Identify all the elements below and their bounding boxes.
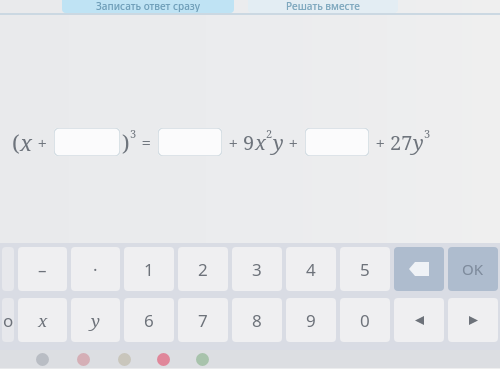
button[interactable]: App xyxy=(118,353,131,366)
button[interactable]: Answer field xyxy=(54,128,120,156)
staticText: = xyxy=(137,131,156,154)
button[interactable]: Решать вместе xyxy=(248,0,398,13)
button[interactable]: Move left xyxy=(394,298,444,342)
staticText: ( xyxy=(12,127,20,157)
staticText: 4 xyxy=(306,258,316,281)
button[interactable]: 9 xyxy=(286,298,336,342)
staticText: 0 xyxy=(360,309,370,332)
staticText: 7 xyxy=(198,309,208,332)
staticText: 27 xyxy=(390,129,413,156)
button[interactable]: App xyxy=(196,353,209,366)
button[interactable]: – xyxy=(18,247,67,291)
staticText: y xyxy=(91,309,100,332)
button[interactable]: 1 xyxy=(124,247,174,291)
button[interactable]: 2 xyxy=(178,247,228,291)
staticText: 1 xyxy=(144,258,154,281)
button[interactable]: Записать ответ сразу xyxy=(62,0,234,13)
staticText: Записать ответ сразу xyxy=(96,0,200,12)
button[interactable]: o xyxy=(2,298,14,342)
staticText: 3 xyxy=(252,258,262,281)
staticText: 3 xyxy=(424,126,431,141)
staticText: 6 xyxy=(144,309,154,332)
staticText: Решать вместе xyxy=(286,0,360,12)
button[interactable]: Backspace xyxy=(394,247,444,291)
staticText: y xyxy=(273,129,284,156)
staticText: · xyxy=(93,258,98,281)
button[interactable]: 7 xyxy=(178,298,228,342)
button[interactable]: · xyxy=(71,247,120,291)
button[interactable]: App xyxy=(36,353,49,366)
staticText: 9 xyxy=(306,309,316,332)
staticText: + xyxy=(371,131,390,154)
staticText: + xyxy=(284,131,303,154)
button[interactable]: App xyxy=(157,353,170,366)
button[interactable]: 8 xyxy=(232,298,282,342)
button[interactable]: 4 xyxy=(286,247,336,291)
staticText: ) xyxy=(122,127,130,157)
staticText: y xyxy=(413,129,424,156)
staticText: – xyxy=(38,258,47,281)
button[interactable]: Answer field xyxy=(305,128,369,156)
button[interactable]: x xyxy=(18,298,67,342)
button[interactable]: OK xyxy=(448,247,498,291)
button[interactable]: App xyxy=(77,353,90,366)
button[interactable]: 0 xyxy=(340,298,390,342)
staticText: 9 xyxy=(243,129,255,156)
staticText: + xyxy=(224,131,243,154)
staticText: 3 xyxy=(130,126,137,141)
button[interactable]: 6 xyxy=(124,298,174,342)
button[interactable]: Answer field xyxy=(158,128,222,156)
button[interactable]: y xyxy=(71,298,120,342)
button[interactable]: 3 xyxy=(232,247,282,291)
staticText: x xyxy=(38,309,48,332)
staticText: + xyxy=(33,131,52,154)
staticText: 5 xyxy=(360,258,370,281)
staticText: OK xyxy=(462,259,484,279)
staticText: o xyxy=(3,309,14,332)
staticText: x xyxy=(255,129,266,156)
staticText: 2 xyxy=(198,258,208,281)
button[interactable]: Move right xyxy=(448,298,498,342)
staticText: 8 xyxy=(252,309,262,332)
staticText: x xyxy=(20,127,33,157)
button[interactable]: 5 xyxy=(340,247,390,291)
staticText: 2 xyxy=(266,126,273,141)
